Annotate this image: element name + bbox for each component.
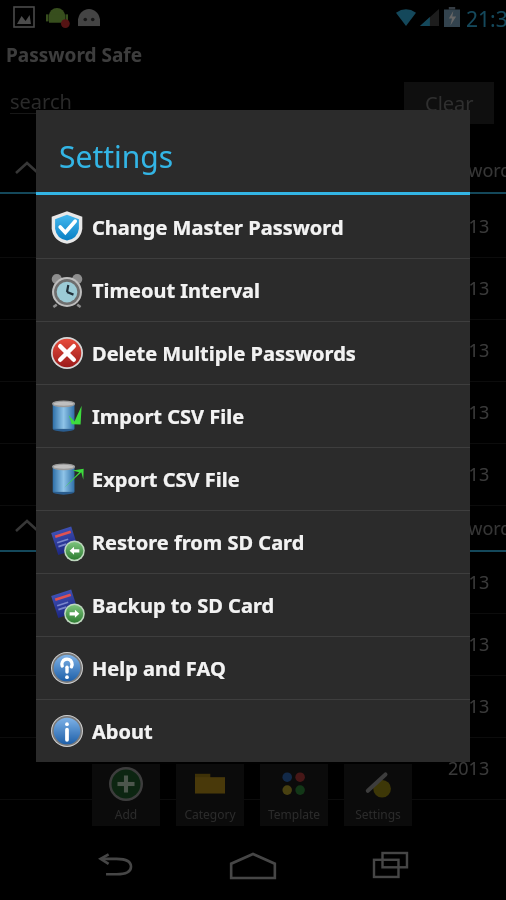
button[interactable]: 2013 bbox=[0, 320, 506, 382]
staticText: Timeout Interval bbox=[92, 277, 261, 304]
staticText: Category bbox=[176, 806, 244, 822]
button[interactable]: Settings bbox=[344, 764, 412, 826]
button[interactable]: Help and FAQ bbox=[36, 637, 470, 699]
button[interactable]: Home bbox=[198, 830, 308, 900]
button[interactable]: Add bbox=[92, 764, 160, 826]
button[interactable]: Timeout Interval bbox=[36, 259, 470, 321]
staticText: Passwords bbox=[430, 516, 506, 541]
staticText: 2013 bbox=[448, 632, 490, 657]
button[interactable]: Delete Multiple Passwords bbox=[36, 322, 470, 384]
button[interactable]: Recent apps bbox=[336, 830, 446, 900]
button[interactable]: 2013 bbox=[0, 382, 506, 444]
button[interactable]: About bbox=[36, 700, 470, 762]
button[interactable]: Template bbox=[260, 764, 328, 826]
button[interactable]: search bbox=[10, 84, 400, 118]
staticText: 2013 bbox=[448, 462, 490, 487]
staticText: Settings bbox=[344, 806, 412, 822]
staticText: 2013 bbox=[448, 276, 490, 301]
button[interactable]: 2013 bbox=[0, 676, 506, 738]
button[interactable]: 2013 bbox=[0, 614, 506, 676]
staticText: 2013 bbox=[448, 570, 490, 595]
staticText: 21:39 bbox=[466, 5, 506, 34]
button[interactable]: Change Master Password bbox=[36, 196, 470, 258]
button[interactable]: Clear bbox=[404, 82, 494, 124]
button[interactable]: Back bbox=[60, 830, 170, 900]
staticText: Backup to SD Card bbox=[92, 592, 275, 619]
staticText: Export CSV File bbox=[92, 466, 240, 493]
button[interactable]: 2013 bbox=[0, 258, 506, 320]
staticText: Add bbox=[92, 806, 160, 822]
button[interactable]: 2013 bbox=[0, 552, 506, 614]
button[interactable]: 2013 bbox=[0, 738, 506, 800]
staticText: Change Master Password bbox=[92, 214, 344, 241]
button[interactable]: 2013 bbox=[0, 444, 506, 506]
staticText: Import CSV File bbox=[92, 403, 245, 430]
staticText: 2013 bbox=[448, 400, 490, 425]
staticText: Template bbox=[260, 806, 328, 822]
staticText: Settings bbox=[59, 136, 174, 177]
button[interactable]: Backup to SD Card bbox=[36, 574, 470, 636]
staticText: Clear bbox=[425, 90, 474, 117]
button[interactable]: 2013 bbox=[0, 196, 506, 258]
staticText: search bbox=[10, 88, 72, 115]
staticText: About bbox=[92, 718, 153, 745]
button[interactable]: Restore from SD Card bbox=[36, 511, 470, 573]
staticText: 2013 bbox=[448, 694, 490, 719]
button[interactable]: Category bbox=[176, 764, 244, 826]
staticText: Restore from SD Card bbox=[92, 529, 305, 556]
staticText: Passwords bbox=[430, 158, 506, 183]
staticText: Help and FAQ bbox=[92, 655, 226, 682]
staticText: 2013 bbox=[448, 214, 490, 239]
staticText: 2013 bbox=[448, 338, 490, 363]
staticText: Password Safe bbox=[6, 42, 143, 68]
button[interactable]: Export CSV File bbox=[36, 448, 470, 510]
button[interactable]: Import CSV File bbox=[36, 385, 470, 447]
staticText: 2013 bbox=[448, 756, 490, 781]
staticText: Delete Multiple Passwords bbox=[92, 340, 356, 367]
